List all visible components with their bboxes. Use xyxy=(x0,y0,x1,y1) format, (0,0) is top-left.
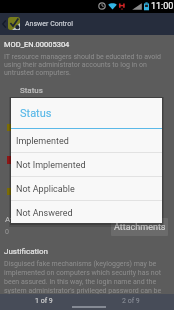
staticText: 1 of 9 xyxy=(35,297,53,305)
button[interactable]: 1 of 9 xyxy=(0,294,87,310)
staticText: MOD_EN.00005304 xyxy=(4,40,70,49)
button[interactable]: Implemented xyxy=(11,129,162,152)
button[interactable]: 2 of 9 xyxy=(87,294,174,310)
other: Back xyxy=(1,20,7,28)
staticText: 11:00 xyxy=(151,1,174,12)
staticText: Status xyxy=(20,107,52,120)
staticText: Justification xyxy=(4,247,49,256)
button[interactable]: Not Applicable xyxy=(11,177,162,200)
staticText: Implemented xyxy=(16,136,69,147)
staticText: IT resource managers should be educated … xyxy=(4,53,165,77)
staticText: Attachments xyxy=(5,215,51,224)
staticText: Disguised fake mechanisms (keyloggers) m… xyxy=(4,260,166,304)
staticText: Attachments xyxy=(114,222,166,233)
staticText: 0 xyxy=(5,228,9,236)
button[interactable]: Not Implemented xyxy=(11,153,162,176)
button[interactable]: Attachments xyxy=(111,218,168,236)
staticText: Answer Control xyxy=(25,20,73,28)
staticText: Not Applicable xyxy=(16,184,75,195)
staticText: 2 of 9 xyxy=(122,297,140,305)
staticText: Status xyxy=(20,86,43,95)
staticText: Not Implemented xyxy=(16,160,86,171)
staticText: Not Answered xyxy=(16,208,73,219)
button[interactable]: Back xyxy=(0,13,174,35)
button[interactable]: Not Answered xyxy=(11,201,162,223)
